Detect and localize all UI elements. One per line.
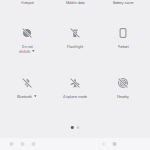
- staticText: Hotspot: [20, 0, 33, 5]
- staticText: disturb: [19, 49, 30, 54]
- button[interactable]: Bluetooth: [3, 78, 51, 105]
- staticText: Nearby: [117, 94, 129, 99]
- button[interactable]: Do not: [3, 28, 51, 55]
- staticText: Flashlight: [67, 44, 83, 49]
- staticText: Battery saver: [112, 0, 133, 5]
- staticText: Do not: [21, 44, 32, 49]
- staticText: Mobile data: [65, 0, 84, 5]
- button[interactable]: Nearby: [99, 78, 147, 105]
- staticText: Airplane mode: [63, 94, 87, 99]
- staticText: Portrait: [117, 44, 128, 49]
- staticText: Bluetooth: [17, 94, 32, 99]
- button[interactable]: Portrait: [99, 28, 147, 55]
- button[interactable]: Flashlight: [51, 28, 99, 55]
- button[interactable]: Airplane mode: [51, 78, 99, 105]
